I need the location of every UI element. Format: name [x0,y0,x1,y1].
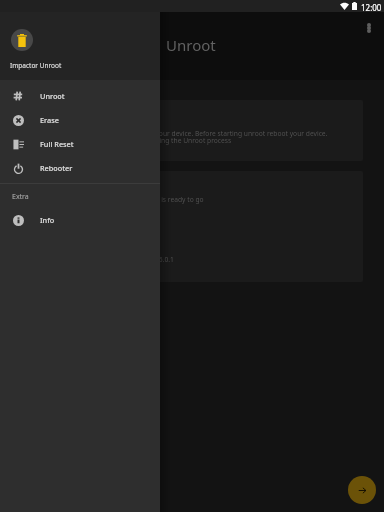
staticText: Unroot is completed and your device is r… [44,195,204,204]
staticText: Do not do anything while the app is doin… [38,136,232,145]
button[interactable]: This application will remove root from y… [21,100,363,161]
button[interactable]: Unroot [0,84,160,108]
staticText: Erase [40,115,59,125]
staticText: The android version of your device is 6.… [42,255,174,264]
staticText: Unroot [40,91,65,101]
button[interactable]: More options [360,19,378,37]
button[interactable]: Rebooter [0,156,160,180]
button[interactable]: Info [0,208,160,232]
button[interactable]: Unroot is completed and your device is r… [21,171,363,282]
staticText: Info [40,215,55,225]
button[interactable]: Full Reset [0,132,160,156]
button[interactable]: Erase [0,108,160,132]
staticText: Full Reset [40,139,74,149]
staticText: Rebooter [40,163,73,173]
staticText: 12:00 [361,2,382,13]
staticText: Impactor Unroot [10,61,62,70]
button[interactable]: Start unroot [348,476,376,504]
staticText: This application will remove root from y… [35,129,328,138]
staticText: Extra [12,192,29,202]
staticText: Unroot [166,35,216,55]
